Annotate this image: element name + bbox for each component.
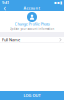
staticText: Change Profile Photo	[14, 21, 49, 27]
staticText: ▪▪▮	[54, 0, 62, 5]
staticText: Account	[23, 5, 40, 11]
staticText: ‹	[3, 3, 5, 13]
button[interactable]: Full Name	[0, 37, 64, 43]
staticText: 9:41	[2, 0, 9, 5]
button[interactable]: Back	[2, 5, 7, 11]
button[interactable]: LOG OUT	[0, 91, 64, 100]
staticText: LOG OUT	[23, 93, 40, 98]
staticText: Update your account information	[9, 27, 54, 31]
staticText: Full Name	[2, 37, 20, 42]
button[interactable]: Profile photo	[27, 12, 37, 22]
button[interactable]: Change Profile Photo	[14, 22, 49, 26]
